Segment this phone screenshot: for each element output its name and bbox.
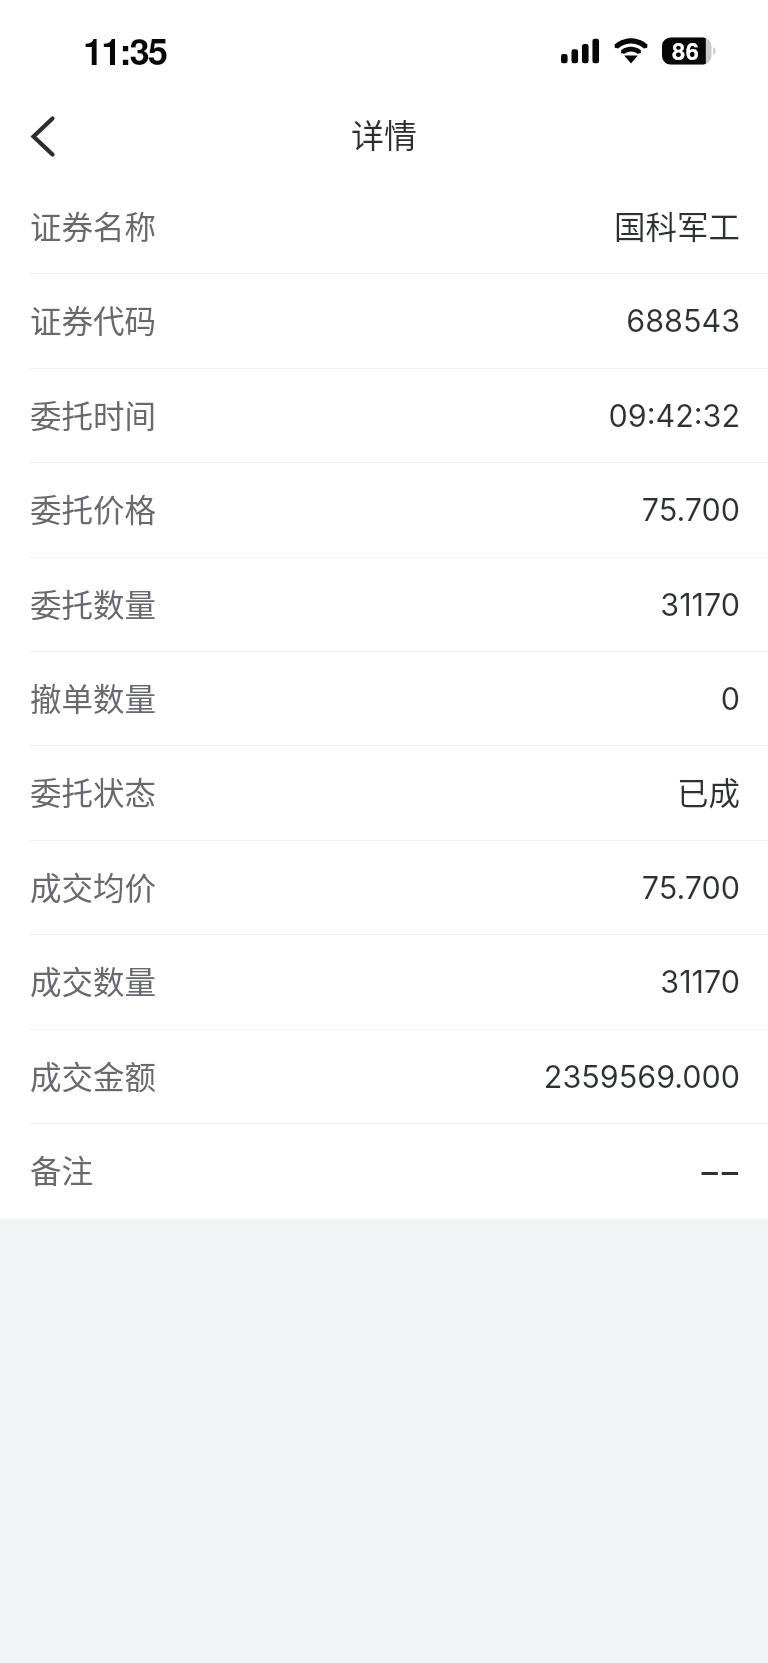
button[interactable]: 委托价格 [0, 462, 768, 556]
staticText: 已成 [165, 768, 740, 814]
staticText: 09:42:32 [165, 397, 740, 434]
staticText: 86 [672, 34, 700, 66]
staticText: 委托状态 [30, 768, 157, 814]
staticText: 委托时间 [30, 391, 157, 437]
staticText: 11:35 [83, 24, 166, 76]
staticText: 备注 [30, 1146, 94, 1192]
button[interactable]: 证券名称 [0, 179, 768, 273]
staticText: 31170 [165, 586, 740, 623]
button[interactable]: 撤单数量 [0, 651, 768, 745]
button[interactable]: 成交数量 [0, 934, 768, 1028]
staticText: 国科军工 [165, 202, 740, 248]
staticText: 75.700 [165, 491, 740, 528]
staticText: 75.700 [165, 869, 740, 906]
button[interactable]: 备注 [0, 1123, 768, 1217]
staticText: 委托价格 [30, 485, 157, 531]
button[interactable]: 委托数量 [0, 557, 768, 651]
staticText: 证券代码 [30, 296, 157, 342]
button[interactable]: 成交金额 [0, 1029, 768, 1123]
staticText: 撤单数量 [30, 674, 157, 720]
staticText: 证券名称 [30, 202, 157, 248]
button[interactable]: Back [12, 97, 74, 175]
button[interactable]: 成交均价 [0, 840, 768, 934]
button[interactable]: 委托时间 [0, 368, 768, 462]
staticText: 2359569.000 [165, 1058, 740, 1095]
staticText: 委托数量 [30, 580, 157, 626]
staticText: –– [104, 1148, 742, 1190]
staticText: 成交均价 [30, 863, 157, 909]
staticText: 31170 [165, 963, 740, 1000]
button[interactable]: 证券代码 [0, 273, 768, 367]
staticText: 688543 [165, 302, 740, 339]
staticText: 详情 [351, 110, 417, 158]
staticText: 0 [165, 680, 740, 717]
staticText: 成交数量 [30, 957, 157, 1003]
button[interactable]: 委托状态 [0, 745, 768, 839]
staticText: 成交金额 [30, 1052, 157, 1098]
